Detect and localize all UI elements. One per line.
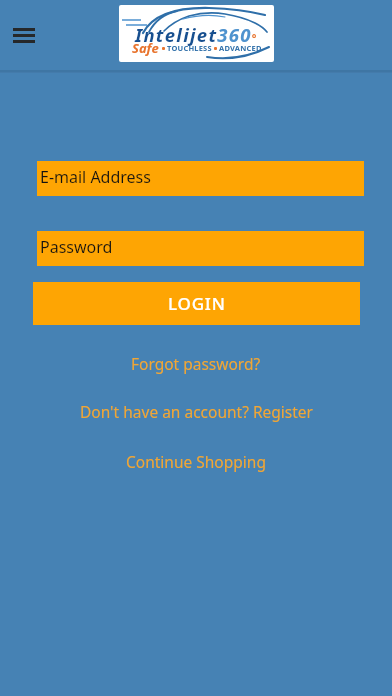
staticText: Don't have an account? Register <box>80 401 313 422</box>
button[interactable] <box>13 28 35 43</box>
button[interactable]: Password <box>37 231 364 266</box>
staticText: Password <box>40 236 113 258</box>
staticText: Continue Shopping <box>126 451 266 472</box>
staticText: E-mail Address <box>40 166 151 188</box>
button[interactable]: LOGIN <box>33 282 360 325</box>
staticText: Intelijet360° <box>135 22 258 47</box>
staticText: ADVANCED <box>219 43 262 53</box>
staticText: Forgot password? <box>131 353 261 374</box>
button[interactable]: Intelijet360° <box>119 5 274 62</box>
staticText: Safe <box>132 39 159 57</box>
staticText: TOUCHLESS <box>167 43 212 53</box>
button[interactable]: Forgot password? <box>131 353 261 374</box>
button[interactable]: E-mail Address <box>37 161 364 196</box>
staticText: LOGIN <box>168 292 226 315</box>
button[interactable]: Continue Shopping <box>126 451 266 472</box>
button[interactable]: Don't have an account? Register <box>80 401 313 422</box>
